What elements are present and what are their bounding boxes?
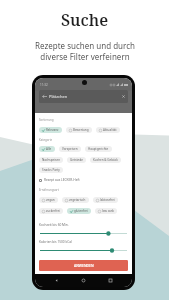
staticText: vegetarisch [69,198,86,202]
staticText: laktosefrei [100,198,115,202]
staticText: Kalorien bis 1500 kCal [39,240,72,244]
staticText: Rezepte suchen und durch diverse Filter … [35,40,135,62]
staticText: Kategorie [39,138,53,142]
button[interactable]: laktosefrei [93,197,118,203]
button[interactable]: Home [78,275,89,286]
staticText: Vorspeisen [62,147,78,151]
staticText: Aktualität [103,128,117,132]
button[interactable]: Hauptgerichte [85,146,112,152]
staticText: Plätzchen [49,94,68,99]
staticText: Alle [46,147,52,151]
staticText: Kuchen & Gebäck [93,158,118,162]
button[interactable]: Bewertung [66,127,92,133]
button[interactable]: zuckerfrei [39,208,63,214]
staticText: Getränke [70,158,83,162]
staticText: Suche [61,9,109,31]
button[interactable]: Nachspeisen [39,157,63,163]
other: Back [42,94,47,99]
button[interactable]: Aktualität [96,127,120,133]
button[interactable]: Back [51,275,62,286]
button[interactable]: vegan [39,197,58,203]
staticText: Nachspeisen [42,158,60,162]
other: Clear search [122,95,125,98]
button[interactable]: low carb [95,208,117,214]
staticText: Snacks Party [42,168,60,172]
button[interactable]: ANWENDEN [39,260,128,271]
staticText: Kochzeit bis 60 Min. [39,223,69,227]
button[interactable]: Kuchen & Gebäck [90,157,121,163]
button[interactable]: Back [39,90,128,103]
staticText: zuckerfrei [46,209,60,213]
button[interactable]: vegetarisch [62,197,89,203]
staticText: Sortierung [39,118,54,122]
staticText: Rezept aus LECKER-Heft [44,178,80,182]
button[interactable]: Snacks Party [39,167,63,173]
staticText: Ernährungsart [39,188,59,192]
staticText: Bewertung [73,128,89,132]
button[interactable]: Rezept aus LECKER-Heft [39,178,80,182]
button[interactable]: Relevanz [39,127,62,133]
staticText: vegan [46,198,55,202]
staticText: glutenfrei [74,209,88,213]
button[interactable]: glutenfrei [67,208,91,214]
staticText: 11:32 [40,83,48,87]
button[interactable]: Vorspeisen [59,146,81,152]
staticText: Relevanz [46,128,59,132]
staticText: low carb [102,209,114,213]
button[interactable]: Alle [39,146,55,152]
button[interactable]: Getränke [67,157,86,163]
button[interactable]: Recent apps [105,275,116,286]
staticText: ANWENDEN [74,263,94,268]
staticText: Hauptgerichte [88,147,109,151]
